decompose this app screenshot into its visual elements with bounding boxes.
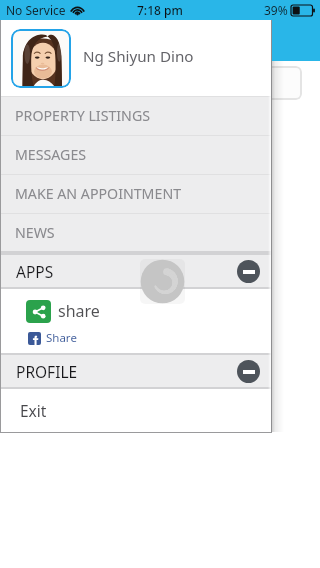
staticText: Ng Shiyun Dino [83,46,194,67]
staticText: 39% [264,2,288,18]
staticText: Share [46,330,77,346]
button[interactable]: PROFILE [0,353,271,389]
button[interactable]: APPS [0,253,271,289]
button[interactable]: Collapse PROFILE [237,360,260,383]
staticText: APPS [16,261,54,282]
button[interactable]: Collapse APPS [237,260,260,283]
staticText: No Service [6,2,66,18]
staticText: PROPERTY LISTINGS [15,106,151,125]
button[interactable] [19,66,302,100]
button[interactable]: Share [28,330,77,346]
button[interactable]: MESSAGES [0,136,271,175]
button[interactable]: MAKE AN APPOINTMENT [0,175,271,214]
button[interactable]: Share [26,300,51,323]
staticText: MESSAGES [15,145,87,164]
staticText: NEWS [15,223,55,242]
button[interactable]: Ng Shiyun Dino [0,20,271,97]
button[interactable]: PROPERTY LISTINGS [0,97,271,136]
staticText: Exit [20,400,47,421]
button[interactable]: Exit [0,389,271,432]
button[interactable]: NEWS [0,214,271,253]
staticText: share [58,300,100,322]
staticText: 7:18 pm [137,2,183,18]
staticText: PROFILE [16,361,78,382]
staticText: MAKE AN APPOINTMENT [15,184,182,203]
